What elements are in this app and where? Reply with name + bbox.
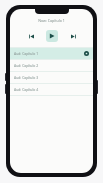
button[interactable]: Aud: Capítulo 3 <box>10 72 93 83</box>
button[interactable]: Previous <box>26 31 36 41</box>
staticText: Now: Capítulo 1 <box>16 18 87 23</box>
staticText: Aud: Capítulo 4 <box>14 87 89 92</box>
button[interactable]: Aud: Capítulo 4 <box>10 84 93 95</box>
other: Now playing <box>84 51 89 56</box>
button[interactable]: Aud: Capítulo 2 <box>10 60 93 71</box>
staticText: Aud: Capítulo 1 <box>14 51 84 56</box>
button[interactable]: Aud: Capítulo 1 <box>10 48 93 59</box>
staticText: Aud: Capítulo 2 <box>14 63 89 68</box>
button[interactable]: Next <box>68 31 78 41</box>
button[interactable]: Play <box>46 30 58 42</box>
staticText: Aud: Capítulo 3 <box>14 75 89 80</box>
